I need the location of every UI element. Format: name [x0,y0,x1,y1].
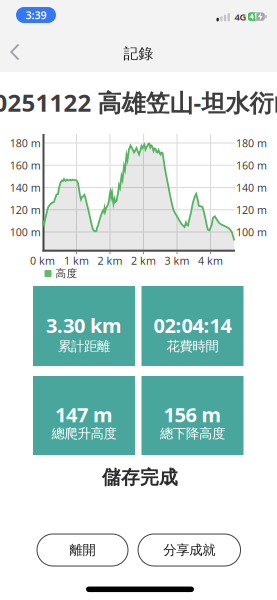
staticText: 1 km [64,253,89,268]
staticText: 儲存完成 [102,466,178,489]
staticText: 2 km [97,253,122,268]
staticText: 3:39 [25,8,46,22]
staticText: 100 m [236,225,267,239]
staticText: 160 m [10,158,41,172]
staticText: 總下降高度 [160,425,225,442]
staticText: 記錄 [123,44,153,62]
staticText: 3.30 km [46,312,122,338]
staticText: 156 m [163,401,221,428]
staticText: 4 km [198,253,223,268]
staticText: 140 m [236,180,267,195]
staticText: 160 m [236,158,267,172]
staticText: 總爬升高度 [51,425,116,442]
staticText: 高度 [55,267,77,280]
button[interactable]: Back [5,41,27,63]
staticText: 140 m [10,180,41,195]
staticText: 02:04:14 [153,312,231,338]
button[interactable]: 分享成就 [138,534,241,566]
staticText: 0 km [30,253,55,268]
staticText: 100 m [10,225,41,239]
staticText: 分享成就 [163,542,215,558]
staticText: 離開 [69,542,95,558]
staticText: 147 m [55,401,113,428]
staticText: 180 m [236,136,267,150]
staticText: 花費時間 [166,338,218,354]
button[interactable]: 離開 [37,534,128,566]
staticText: 2 km [131,253,156,268]
staticText: 累計距離 [58,338,110,354]
staticText: 4G [234,11,246,23]
staticText: 20251122 高雄笠山-坦水衍山 [0,87,277,118]
staticText: 180 m [10,136,41,150]
staticText: 120 m [236,203,267,217]
staticText: 120 m [10,203,41,217]
staticText: 3 km [164,253,189,268]
